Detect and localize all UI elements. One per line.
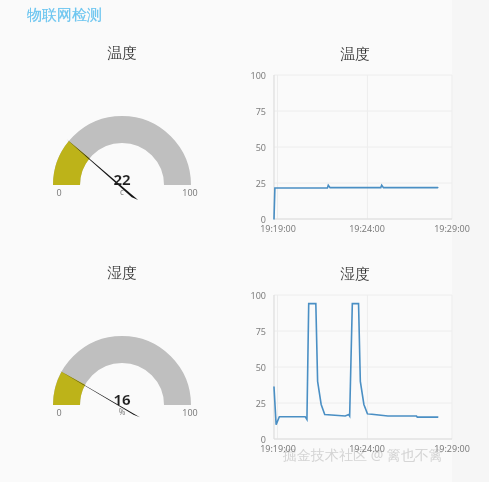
staticText: 75 <box>238 325 266 337</box>
staticText: 100 <box>238 69 266 81</box>
staticText: 25 <box>238 177 266 189</box>
staticText: 19:29:00 <box>424 442 480 454</box>
staticText: 19:24:00 <box>339 442 395 454</box>
button[interactable]: Gauge 22 c <box>53 116 191 187</box>
staticText: 75 <box>238 105 266 117</box>
staticText: 100 <box>173 186 207 198</box>
staticText: 0 <box>238 433 266 445</box>
staticText: 温度 <box>82 44 162 63</box>
staticText: 22 <box>82 169 162 189</box>
staticText: 19:24:00 <box>339 222 395 234</box>
staticText: 25 <box>238 397 266 409</box>
staticText: 19:19:00 <box>250 222 306 234</box>
staticText: 温度 <box>310 45 400 64</box>
button[interactable]: 湿度 chart <box>274 295 452 439</box>
staticText: 0 <box>238 213 266 225</box>
staticText: 0 <box>47 186 71 198</box>
staticText: 掘金技术社区 @ 篱也不篱 <box>283 445 443 464</box>
staticText: 湿度 <box>310 265 400 284</box>
staticText: % <box>82 406 162 417</box>
button[interactable]: 物联网检测 <box>27 6 102 25</box>
staticText: 19:19:00 <box>250 442 306 454</box>
staticText: c <box>82 186 162 197</box>
staticText: 16 <box>82 389 162 409</box>
staticText: 100 <box>238 289 266 301</box>
button[interactable]: 温度 chart <box>274 75 452 219</box>
staticText: 100 <box>173 406 207 418</box>
staticText: 湿度 <box>82 264 162 283</box>
staticText: 50 <box>238 141 266 153</box>
button[interactable]: Gauge 16 % <box>53 336 191 407</box>
staticText: 物联网检测 <box>27 6 102 25</box>
staticText: 0 <box>47 406 71 418</box>
staticText: 50 <box>238 361 266 373</box>
staticText: 19:29:00 <box>424 222 480 234</box>
